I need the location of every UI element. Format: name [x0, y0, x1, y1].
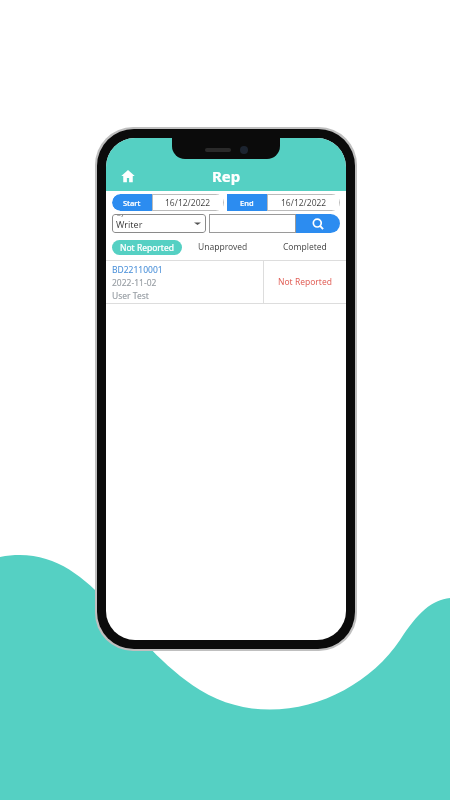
- button[interactable]: Not Reported: [264, 261, 346, 303]
- staticText: BD22110001: [112, 264, 163, 276]
- button[interactable]: End: [227, 194, 340, 211]
- staticText: 16/12/2022: [281, 197, 327, 209]
- button[interactable]: Search: [296, 214, 340, 233]
- staticText: End: [240, 198, 254, 208]
- button[interactable]: Completed: [264, 238, 346, 256]
- button[interactable]: Search: [209, 214, 340, 233]
- staticText: Rep: [212, 166, 241, 186]
- staticText: User Test: [112, 290, 149, 302]
- staticText: Not Reported: [278, 276, 332, 288]
- button[interactable]: Not Reported: [112, 240, 182, 255]
- staticText: Not Reported: [120, 242, 174, 254]
- button[interactable]: Writer: [112, 214, 206, 233]
- button[interactable]: Unapproved: [182, 238, 264, 256]
- staticText: 2022-11-02: [112, 277, 157, 289]
- staticText: Writer: [116, 218, 143, 230]
- staticText: 16/12/2022: [165, 197, 211, 209]
- staticText: By: [117, 214, 124, 218]
- button[interactable]: Start: [112, 194, 224, 211]
- staticText: Start: [123, 198, 141, 208]
- button[interactable]: Home: [115, 163, 141, 189]
- staticText: Completed: [283, 241, 327, 253]
- staticText: Unapproved: [198, 241, 248, 253]
- button[interactable]: BD22110001: [106, 261, 263, 303]
